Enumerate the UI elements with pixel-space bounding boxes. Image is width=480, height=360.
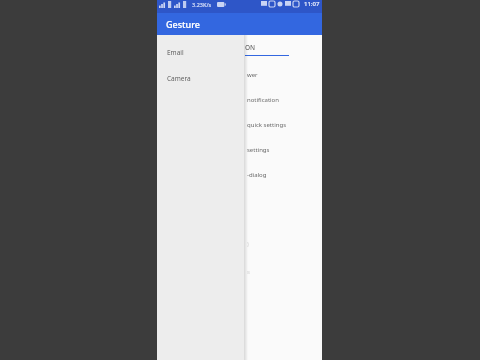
- staticText: settings: [247, 146, 270, 154]
- button[interactable]: -dialog: [245, 162, 322, 187]
- button[interactable]: s: [245, 263, 322, 281]
- staticText: quick settings: [247, 121, 287, 129]
- button[interactable]: wer: [245, 62, 322, 87]
- staticText: 3.23K/s: [192, 1, 212, 8]
- staticText: wer: [247, 71, 258, 79]
- button[interactable]: settings: [245, 137, 322, 162]
- staticText: ): [247, 240, 249, 248]
- button[interactable]: notification: [245, 87, 322, 112]
- button[interactable]: Email: [157, 39, 244, 65]
- staticText: Email: [167, 48, 184, 57]
- staticText: 11:07: [304, 0, 320, 8]
- staticText: Camera: [167, 74, 191, 83]
- staticText: -dialog: [247, 171, 267, 179]
- staticText: notification: [247, 96, 279, 104]
- button[interactable]: ): [245, 235, 322, 253]
- staticText: s: [247, 268, 250, 276]
- button[interactable]: quick settings: [245, 112, 322, 137]
- staticText: ON: [245, 43, 256, 52]
- button[interactable]: ON: [245, 39, 322, 55]
- button[interactable]: Camera: [157, 65, 244, 91]
- staticText: Gesture: [166, 18, 200, 30]
